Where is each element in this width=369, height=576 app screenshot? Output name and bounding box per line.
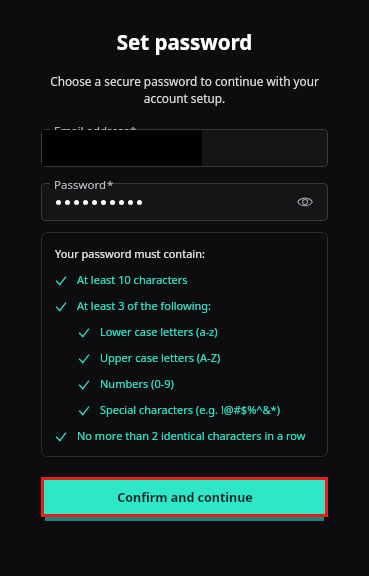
staticText: Choose a secure password to continue wit… — [41, 73, 328, 107]
staticText: Password — [54, 177, 107, 193]
staticText: Confirm and continue — [117, 489, 253, 506]
staticText: At least 10 characters — [77, 272, 188, 287]
staticText: Special characters (e.g. !@#$%^&*) — [100, 402, 280, 417]
staticText: * — [107, 177, 114, 193]
staticText: Your password must contain: — [55, 246, 205, 261]
staticText: At least 3 of the following: — [77, 298, 212, 313]
staticText: * — [130, 123, 137, 139]
staticText: Set password — [41, 28, 328, 56]
staticText: Lower case letters (a-z) — [100, 324, 218, 339]
staticText: No more than 2 identical characters in a… — [77, 428, 306, 443]
staticText: Email address — [54, 123, 130, 139]
button[interactable]: Show password — [293, 190, 317, 214]
button[interactable]: Confirm and continue — [44, 480, 325, 514]
staticText: Upper case letters (A-Z) — [100, 350, 221, 365]
staticText: Numbers (0-9) — [100, 376, 174, 391]
